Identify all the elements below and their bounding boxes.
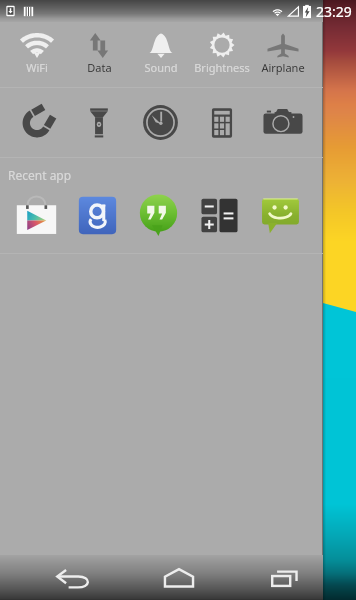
button[interactable]: Phone: [6, 88, 68, 157]
button[interactable]: Sound: [130, 22, 191, 87]
staticText: WiFi: [26, 60, 48, 75]
button[interactable]: Brightness: [191, 22, 252, 87]
staticText: Sound: [144, 60, 178, 75]
button[interactable]: Google: [77, 195, 118, 236]
staticText: 23:29: [316, 2, 352, 21]
staticText: Recent app: [8, 167, 72, 183]
button[interactable]: WiFi: [6, 22, 68, 87]
button[interactable]: Messaging: [260, 195, 301, 236]
button[interactable]: Back: [48, 555, 100, 600]
button[interactable]: Camera: [252, 88, 313, 157]
button[interactable]: Recent apps: [259, 555, 311, 600]
staticText: Brightness: [194, 60, 250, 75]
button[interactable]: Play Store: [16, 195, 57, 236]
button[interactable]: Flashlight: [68, 88, 130, 157]
button[interactable]: Hangouts: [138, 195, 179, 236]
button[interactable]: Data: [68, 22, 130, 87]
button[interactable]: Home: [153, 555, 205, 600]
button[interactable]: Clock: [130, 88, 191, 157]
button[interactable]: Calculator: [199, 195, 240, 236]
staticText: Data: [87, 60, 112, 75]
button[interactable]: Airplane: [252, 22, 313, 87]
button[interactable]: Calculator: [191, 88, 252, 157]
staticText: Airplane: [261, 60, 305, 75]
